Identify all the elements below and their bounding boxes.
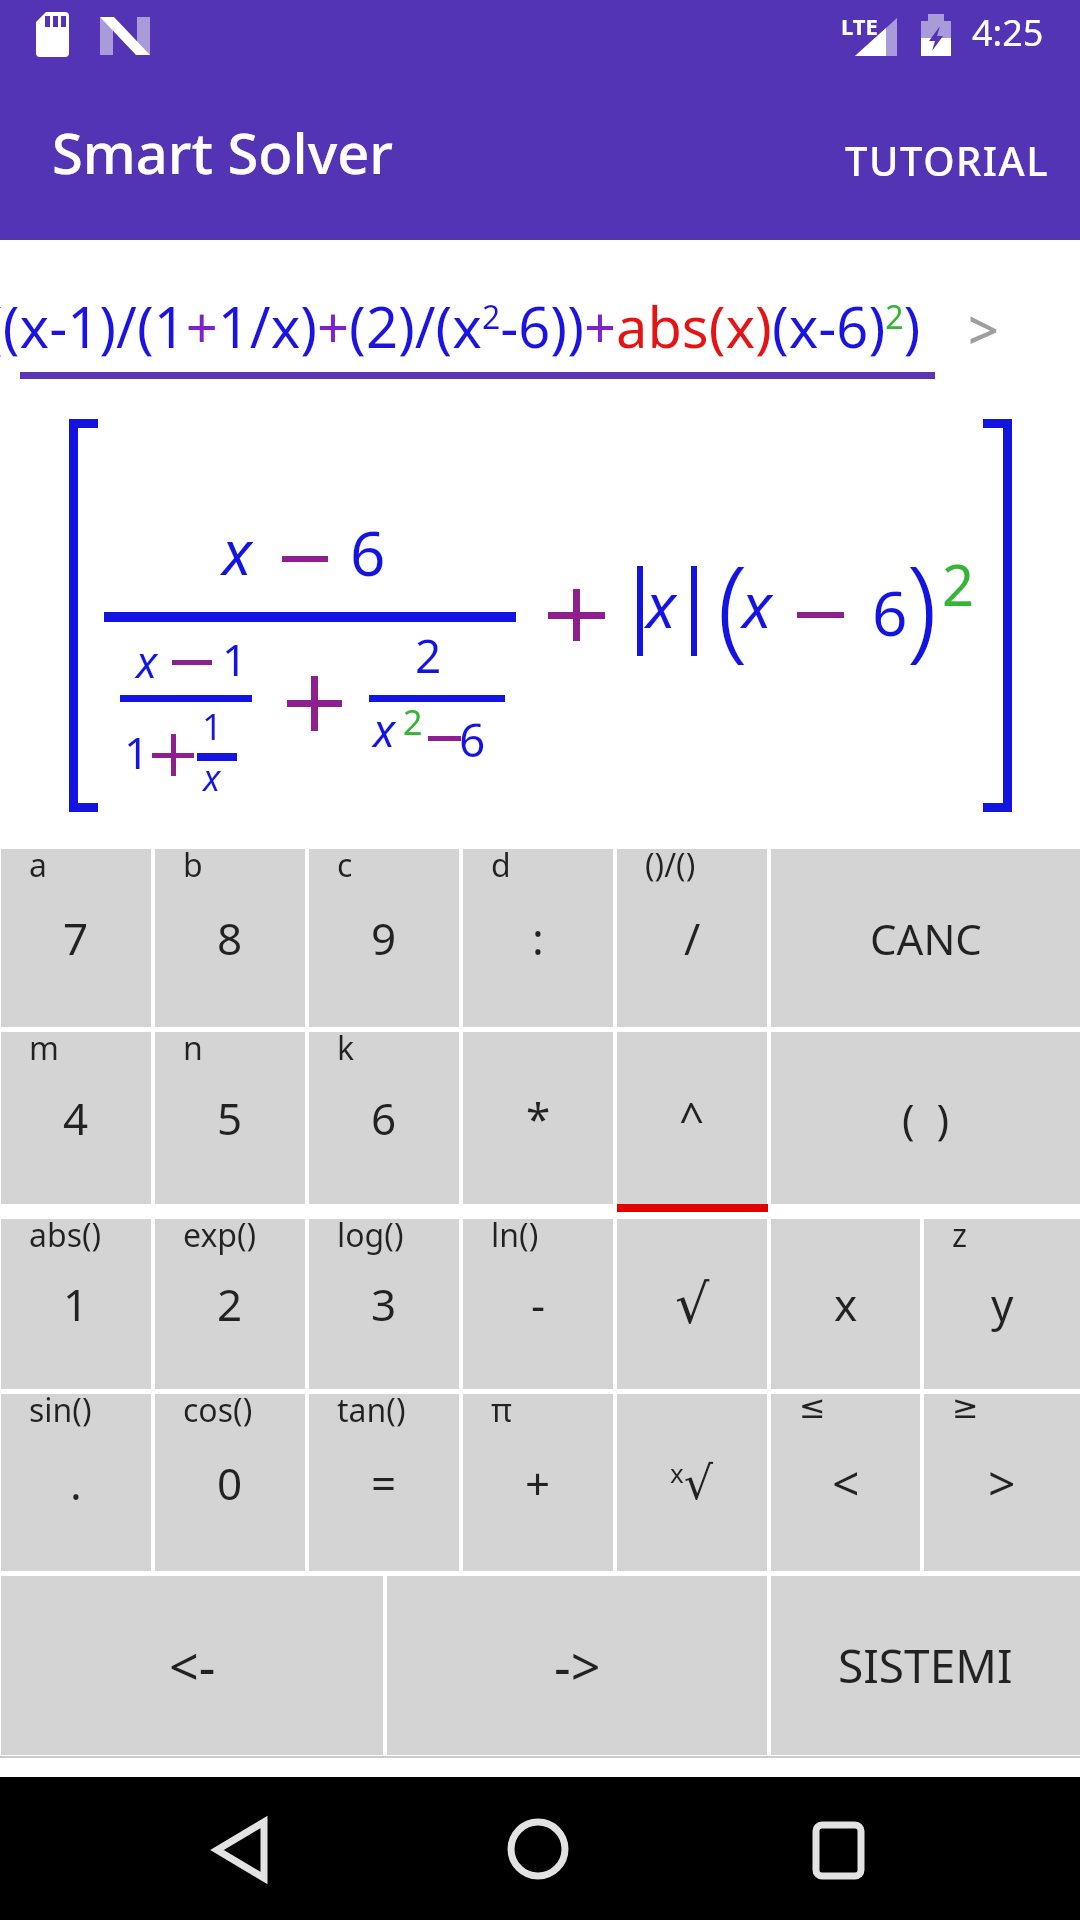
staticText: ln(): [491, 1213, 539, 1257]
button[interactable]: k: [309, 1032, 459, 1204]
staticText: c: [337, 843, 353, 887]
staticText: sin(): [29, 1388, 92, 1432]
button[interactable]: x√: [617, 1394, 767, 1571]
button[interactable]: ≤: [771, 1394, 920, 1571]
staticText: ≥: [952, 1388, 979, 1425]
button[interactable]: [790, 1800, 890, 1900]
staticText: cos(): [183, 1388, 253, 1432]
staticText: 4:25: [972, 8, 1044, 57]
button[interactable]: ( ): [771, 1032, 1080, 1204]
staticText: x: [646, 562, 676, 646]
staticText: >: [988, 1450, 1016, 1515]
staticText: CANC: [870, 910, 982, 967]
button[interactable]: ((x-1)/(1+1/x)+(2)/(x2-6))+abs(x)(x-6)2): [0, 250, 946, 380]
button[interactable]: sin(): [1, 1394, 151, 1571]
staticText: LTE: [841, 11, 878, 41]
staticText: +: [525, 1453, 551, 1513]
staticText: x√: [670, 1455, 714, 1510]
staticText: √: [675, 1273, 710, 1336]
staticText: 2: [217, 1274, 243, 1334]
staticText: ( ): [902, 1090, 950, 1147]
button[interactable]: n: [155, 1032, 305, 1204]
button[interactable]: z: [924, 1219, 1080, 1389]
staticText: <-: [169, 1630, 216, 1701]
button[interactable]: ()/(): [617, 849, 767, 1027]
staticText: :: [532, 908, 544, 968]
button[interactable]: c: [309, 849, 459, 1027]
button[interactable]: cos(): [155, 1394, 305, 1571]
button[interactable]: a: [1, 849, 151, 1027]
staticText: <: [832, 1450, 860, 1515]
button[interactable]: ≥: [924, 1394, 1080, 1571]
staticText: ^: [679, 1088, 705, 1148]
staticText: 1: [222, 629, 248, 689]
button[interactable]: [490, 1800, 590, 1900]
staticText: x: [373, 698, 396, 761]
button[interactable]: >: [940, 270, 1050, 380]
staticText: 9: [371, 908, 397, 968]
staticText: TUTORIAL: [845, 133, 1050, 187]
button[interactable]: exp(): [155, 1219, 305, 1389]
staticText: m: [29, 1026, 59, 1070]
staticText: exp(): [183, 1213, 257, 1257]
staticText: (: [717, 527, 749, 680]
button[interactable]: b: [155, 849, 305, 1027]
staticText: 2: [403, 699, 423, 745]
button[interactable]: x: [771, 1219, 920, 1389]
staticText: 6: [350, 510, 386, 594]
staticText: 5: [217, 1088, 243, 1148]
button[interactable]: CANC: [771, 849, 1080, 1027]
staticText: >: [968, 292, 999, 366]
button[interactable]: TUTORIAL: [845, 120, 1060, 200]
staticText: 1: [124, 722, 150, 782]
staticText: 1: [202, 702, 223, 751]
staticText: 6: [872, 570, 908, 654]
button[interactable]: d: [463, 849, 613, 1027]
button[interactable]: abs(): [1, 1219, 151, 1389]
button[interactable]: ->: [387, 1576, 767, 1755]
staticText: x: [742, 562, 772, 646]
staticText: 6: [459, 708, 486, 771]
button[interactable]: m: [1, 1032, 151, 1204]
staticText: -: [531, 1274, 546, 1334]
staticText: log(): [337, 1213, 404, 1257]
button[interactable]: π: [463, 1394, 613, 1571]
staticText: k: [337, 1026, 355, 1070]
staticText: b: [183, 843, 203, 887]
staticText: ->: [554, 1630, 601, 1701]
staticText: z: [952, 1213, 968, 1257]
staticText: π: [491, 1388, 512, 1432]
staticText: a: [29, 843, 47, 887]
staticText: ()/(): [645, 843, 696, 887]
staticText: *: [526, 1088, 551, 1148]
button[interactable]: tan(): [309, 1394, 459, 1571]
staticText: tan(): [337, 1388, 406, 1432]
staticText: ((x-1)/(1+1/x)+(2)/(x2-6))+abs(x)(x-6)2): [0, 288, 921, 364]
staticText: x: [834, 1274, 858, 1334]
staticText: 8: [217, 908, 243, 968]
button[interactable]: ^: [617, 1032, 767, 1204]
button[interactable]: <-: [1, 1576, 383, 1755]
staticText: y: [991, 1274, 1014, 1334]
button[interactable]: ln(): [463, 1219, 613, 1389]
staticText: /: [684, 908, 701, 968]
staticText: 2: [942, 546, 975, 622]
button[interactable]: SISTEMI: [771, 1576, 1080, 1755]
staticText: x: [203, 753, 221, 802]
staticText: x: [222, 509, 252, 593]
staticText: abs(): [29, 1213, 102, 1257]
staticText: 2: [415, 624, 442, 687]
button[interactable]: [190, 1800, 290, 1900]
staticText: x: [136, 631, 158, 691]
staticText: 1: [63, 1274, 89, 1334]
staticText: .: [70, 1453, 82, 1513]
staticText: SISTEMI: [838, 1634, 1013, 1697]
staticText: ≤: [799, 1388, 826, 1425]
button[interactable]: √: [617, 1219, 767, 1389]
staticText: 6: [371, 1088, 397, 1148]
button[interactable]: *: [463, 1032, 613, 1204]
staticText: 3: [371, 1274, 397, 1334]
staticText: d: [491, 843, 511, 887]
button[interactable]: log(): [309, 1219, 459, 1389]
staticText: =: [371, 1453, 397, 1513]
